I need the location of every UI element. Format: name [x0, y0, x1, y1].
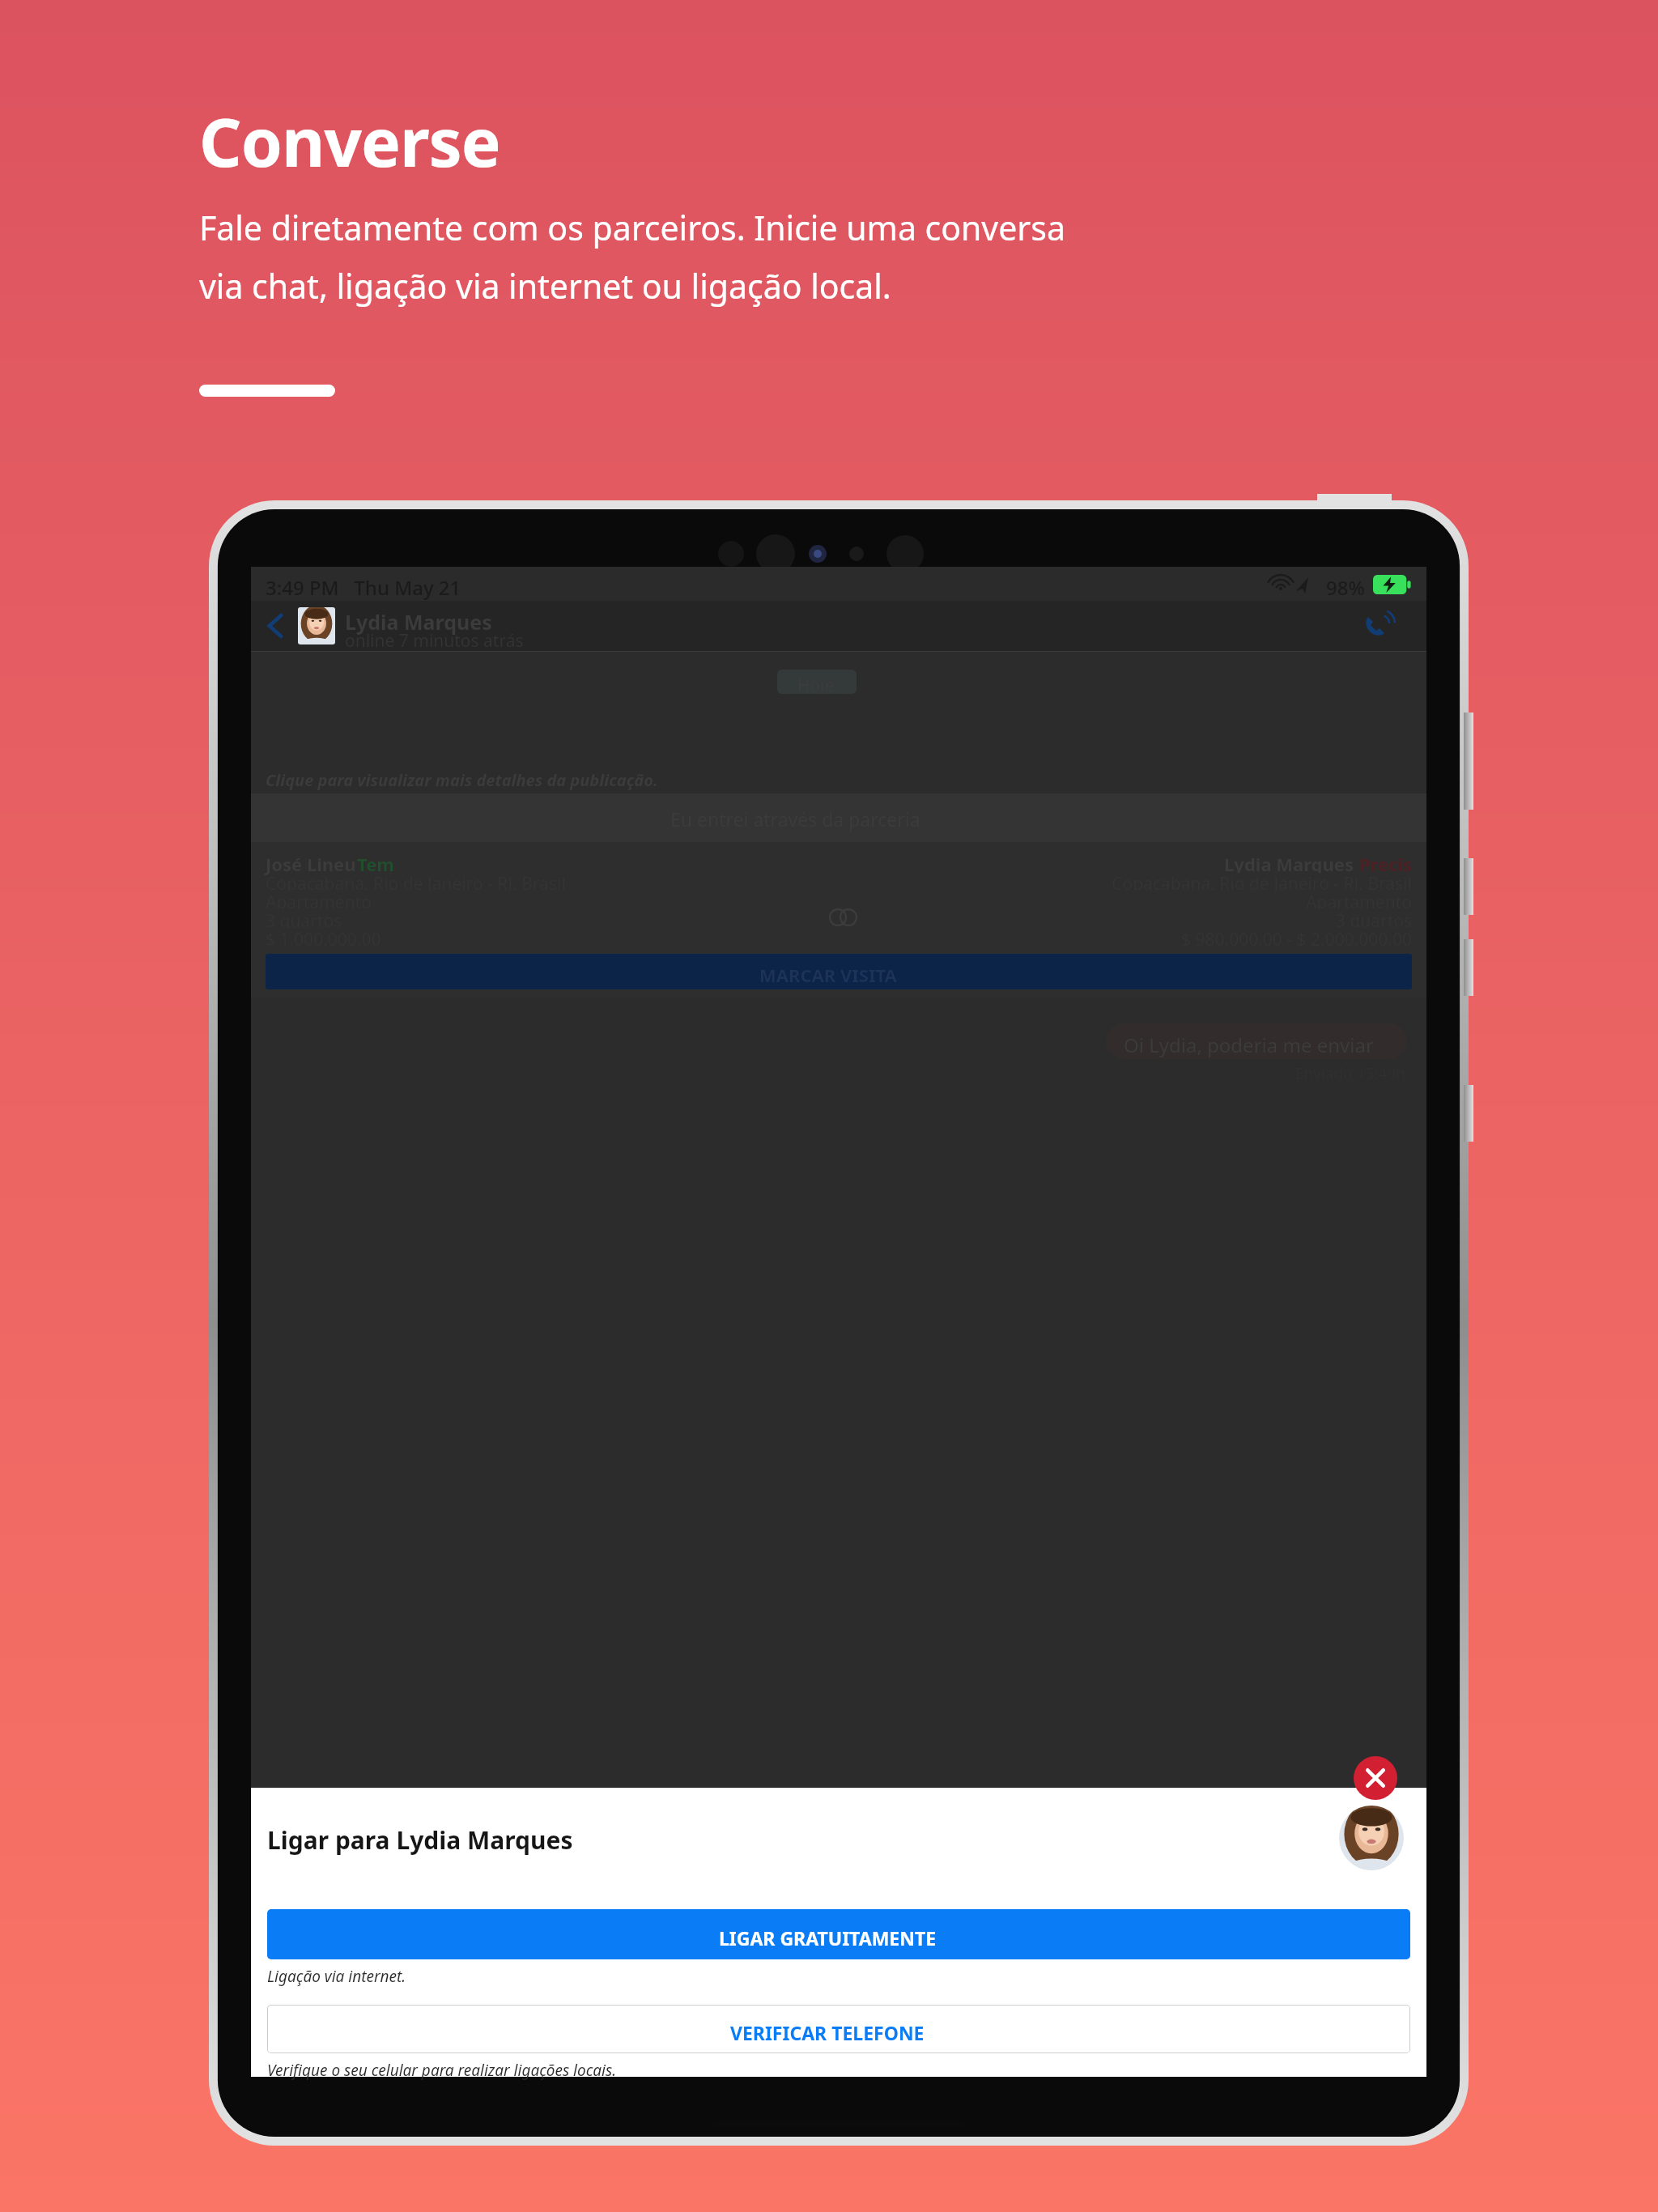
staticText: online 7 minutos atrás [345, 629, 524, 653]
staticText: LIGAR GRATUITAMENTE [719, 1925, 937, 1950]
staticText: Verifique o seu celular para realizar li… [267, 2060, 617, 2081]
button[interactable]: VERIFICAR TELEFONE [267, 2005, 1410, 2053]
staticText: 3:49 PM Thu May 21 [266, 574, 461, 601]
staticText: Clique para visualizar mais detalhes da … [266, 769, 658, 791]
staticText: Tem [357, 852, 394, 876]
staticText: Ligação via internet. [267, 1966, 406, 1987]
button[interactable]: Eu entrei através da parceria [251, 793, 1426, 998]
staticText: Converse [199, 96, 500, 186]
button[interactable]: Fechar [1354, 1756, 1397, 1800]
staticText: VERIFICAR TELEFONE [730, 2020, 925, 2045]
staticText: Ligar para Lydia Marques [267, 1823, 573, 1857]
staticText: Fale diretamente com os parceiros. Inici… [199, 205, 1065, 308]
staticText: MARCAR VISITA [759, 963, 897, 987]
staticText: 98% [1326, 574, 1365, 601]
staticText: Precisa [1355, 852, 1412, 873]
button[interactable]: LIGAR GRATUITAMENTE [267, 1909, 1410, 1959]
button[interactable]: Lydia Marques [298, 604, 1334, 648]
staticText: José Lineu [266, 852, 356, 876]
button[interactable]: Back [254, 606, 296, 646]
staticText: Lydia Marques [345, 608, 492, 636]
button[interactable]: Call [1357, 607, 1404, 646]
staticText: Lydia Marques [959, 852, 1354, 873]
staticText: Oi Lydia, poderia me enviar fotos? [1124, 1032, 1407, 1059]
